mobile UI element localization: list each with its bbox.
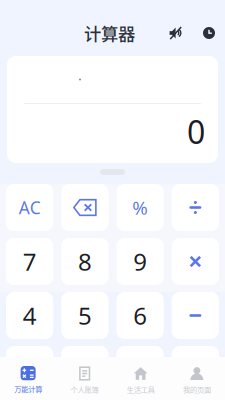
button[interactable]: AC xyxy=(6,184,53,231)
button[interactable] xyxy=(172,184,219,231)
button[interactable]: History xyxy=(198,22,220,44)
button[interactable]: 8 xyxy=(61,238,108,285)
button[interactable] xyxy=(172,292,219,339)
staticText: 生活工具 xyxy=(127,384,155,395)
button[interactable]: 5 xyxy=(61,292,108,339)
staticText: AC xyxy=(19,196,41,219)
staticText: 9 xyxy=(133,246,147,277)
button[interactable]: 4 xyxy=(6,292,53,339)
button[interactable]: % xyxy=(116,184,164,231)
button[interactable]: 2 xyxy=(61,346,108,393)
button[interactable]: 生活工具 xyxy=(112,357,169,400)
button[interactable] xyxy=(172,346,219,393)
staticText: 2 xyxy=(78,354,92,385)
staticText: 0 xyxy=(187,110,205,153)
button[interactable]: 我的页面 xyxy=(169,357,225,400)
staticText: 6 xyxy=(133,300,147,331)
button[interactable]: 3 xyxy=(116,346,164,393)
button[interactable]: 9 xyxy=(116,238,164,285)
button[interactable] xyxy=(61,184,108,231)
button[interactable]: 1 xyxy=(6,346,53,393)
button[interactable]: 万能计算 xyxy=(0,357,56,400)
staticText: % xyxy=(132,195,148,220)
button[interactable]: Mute xyxy=(164,21,187,44)
staticText: 我的页面 xyxy=(183,384,211,395)
staticText: 万能计算 xyxy=(14,383,42,394)
staticText: 个人账簿 xyxy=(70,384,98,395)
staticText: 8 xyxy=(78,246,92,277)
staticText: 5 xyxy=(78,300,92,331)
staticText: 7 xyxy=(23,246,37,277)
staticText: 1 xyxy=(23,354,37,385)
staticText: 3 xyxy=(133,354,147,385)
staticText: 计算器 xyxy=(84,20,135,46)
button[interactable]: 7 xyxy=(6,238,53,285)
staticText: 4 xyxy=(23,300,37,331)
button[interactable]: 6 xyxy=(116,292,164,339)
button[interactable] xyxy=(172,238,219,285)
button[interactable]: 个人账簿 xyxy=(56,357,112,400)
